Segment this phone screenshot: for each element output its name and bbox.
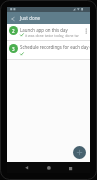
button[interactable] xyxy=(85,28,88,35)
button[interactable]: 3 xyxy=(7,41,90,59)
staticText: 2 xyxy=(12,28,15,34)
staticText: Schedule recordings for each day on ja xyxy=(20,44,90,50)
button[interactable] xyxy=(45,164,53,172)
staticText: Just done xyxy=(20,15,41,21)
button[interactable] xyxy=(9,15,17,22)
staticText: it was done twice today, done tw xyxy=(25,33,79,38)
button[interactable] xyxy=(23,164,31,172)
staticText: 3 xyxy=(12,46,15,52)
button[interactable] xyxy=(66,164,74,172)
staticText: Launch app on this day xyxy=(20,27,68,33)
button[interactable] xyxy=(73,146,86,159)
button[interactable]: 2 xyxy=(7,24,90,41)
